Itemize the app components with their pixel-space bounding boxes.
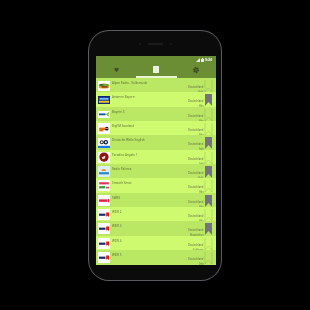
button[interactable]: WDR 3	[96, 221, 216, 236]
staticText: Volk	[198, 90, 204, 94]
staticText: Hits	[199, 133, 204, 137]
staticText: Schlager	[193, 248, 204, 252]
button[interactable]: Settings	[176, 63, 216, 76]
staticText: Deutschland	[188, 157, 204, 161]
button[interactable]: Deutsche Welle English	[96, 135, 216, 150]
staticText: Deutschland	[188, 142, 204, 146]
button[interactable]: SWR3	[96, 193, 216, 208]
staticText: BigFM Saarland	[112, 124, 135, 128]
staticText: Info	[199, 262, 204, 266]
staticText: Deutschland	[188, 85, 204, 89]
button[interactable]: Stations	[136, 63, 176, 76]
button[interactable]: Paradiso Angelo 1	[96, 150, 216, 165]
staticText: Deutschland	[188, 200, 204, 204]
staticText: Deutschland	[188, 171, 204, 175]
button[interactable]: Bayern 3	[96, 107, 216, 122]
staticText: SWR3	[112, 196, 121, 200]
staticText: Deutschland	[188, 228, 204, 232]
staticText: Deutschland	[188, 128, 204, 132]
button[interactable]: Radio Paloma	[96, 164, 216, 179]
staticText: Deutschland	[188, 257, 204, 261]
staticText: Hits	[199, 205, 204, 209]
staticText: Volk	[198, 176, 204, 180]
staticText: WDR 5	[112, 253, 122, 257]
button[interactable]: WDR 4	[96, 236, 216, 251]
staticText: Deutschland	[188, 114, 204, 118]
staticText: Hits	[199, 190, 204, 194]
button[interactable]: Smooth Xmas	[96, 178, 216, 193]
button[interactable]: Favorites	[96, 63, 136, 76]
staticText: Smooth Xmas	[112, 181, 132, 185]
staticText: Deutsche Welle English	[112, 138, 145, 142]
staticText: Deutschland	[188, 214, 204, 218]
button[interactable]: WDR 5	[96, 250, 216, 265]
staticText: WDR 3	[112, 224, 122, 228]
staticText: 9:24	[205, 57, 213, 62]
staticText: Klassisches	[190, 233, 204, 237]
staticText: Info	[199, 147, 204, 151]
staticText: WDR 2	[112, 210, 122, 214]
button[interactable]: BigFM Saarland	[96, 121, 216, 136]
staticText: Hits	[199, 219, 204, 223]
button[interactable]: Antenne Bayern	[96, 92, 216, 107]
staticText: Deutschland	[188, 243, 204, 247]
staticText: Hits	[199, 119, 204, 123]
staticText: Hits	[199, 104, 204, 108]
staticText: Info	[199, 162, 204, 166]
staticText: Radio Paloma	[112, 167, 132, 171]
staticText: Bayern 3	[112, 110, 125, 114]
staticText: Antenne Bayern	[112, 95, 135, 99]
button[interactable]: WDR 2	[96, 207, 216, 222]
button[interactable]: Alpen Radio - Volksmusik	[96, 78, 216, 93]
staticText: WDR 4	[112, 239, 122, 243]
staticText: Paradiso Angelo 1	[112, 153, 138, 157]
staticText: Alpen Radio - Volksmusik	[112, 81, 148, 85]
staticText: Deutschland	[188, 185, 204, 189]
staticText: Deutschland	[188, 99, 204, 103]
